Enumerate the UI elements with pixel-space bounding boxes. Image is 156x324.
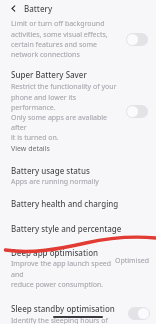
button[interactable]: Back: [6, 1, 20, 15]
staticText: Limit or turn off background activities,…: [11, 19, 108, 59]
button[interactable]: Battery style and percentage: [0, 223, 156, 234]
button[interactable]: Sleep standby optimisation: [0, 303, 156, 324]
staticText: Restrict the functionality of your phone…: [11, 82, 120, 142]
button[interactable]: Battery usage status: [0, 165, 156, 187]
staticText: Battery health and charging: [11, 198, 119, 209]
staticText: Sleep standby optimisation: [11, 303, 115, 314]
staticText: Battery: [24, 3, 53, 14]
button[interactable]: Deep app optimisation: [0, 247, 156, 289]
staticText: Apps are running normally: [11, 177, 99, 187]
staticText: Battery usage status: [11, 165, 90, 176]
staticText: Super Battery Saver: [11, 69, 87, 80]
staticText: Deep app optimisation: [11, 247, 99, 258]
button[interactable]: Battery health and charging: [0, 198, 156, 209]
staticText: Battery style and percentage: [11, 223, 122, 234]
button[interactable]: Sleep standby optimisation toggle: [128, 307, 150, 320]
button[interactable]: Limit or turn off background activities,…: [0, 16, 156, 63]
button[interactable]: Super Battery Saver toggle: [126, 105, 148, 118]
staticText: Identify the sleeping hours of the user …: [11, 316, 123, 324]
staticText: Optimised: [115, 256, 150, 266]
button[interactable]: Battery saver toggle: [126, 33, 148, 46]
button[interactable]: Super Battery Saver: [0, 69, 156, 154]
staticText: Improve the app launch speed and reduce …: [11, 259, 112, 289]
button[interactable]: View details: [11, 144, 50, 154]
